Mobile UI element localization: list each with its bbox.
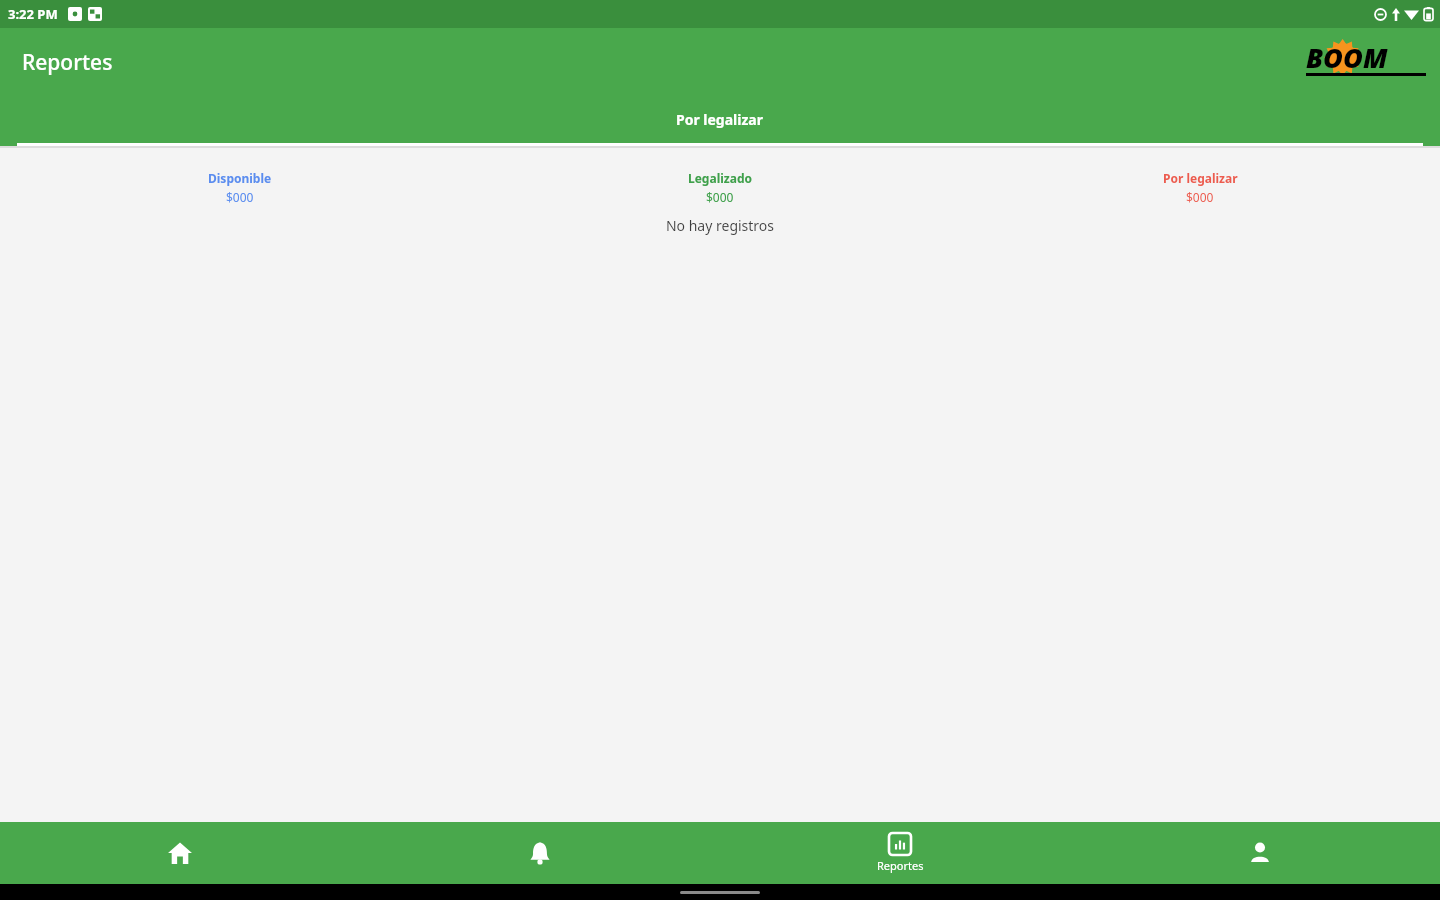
button[interactable]: Disponible — [0, 170, 480, 205]
button[interactable]: Por legalizar — [960, 170, 1440, 205]
button[interactable]: Profile — [1080, 822, 1440, 884]
staticText: Por legalizar — [1163, 170, 1238, 186]
button[interactable]: Legalizado — [480, 170, 960, 205]
staticText: Legalizado — [688, 170, 752, 186]
button[interactable]: Notifications — [360, 822, 720, 884]
staticText: No hay registros — [0, 216, 1440, 235]
staticText: 3:22 PM — [8, 5, 58, 23]
staticText: Por legalizar — [676, 110, 764, 129]
staticText: Reportes — [22, 48, 113, 77]
button[interactable]: Reportes — [720, 822, 1080, 884]
staticText: BOOM — [1306, 39, 1388, 76]
staticText: Disponible — [208, 170, 272, 186]
button[interactable]: BOOM logo — [1306, 39, 1426, 81]
staticText: $000 — [226, 189, 254, 205]
button[interactable]: Por legalizar — [0, 110, 1440, 146]
staticText: Reportes — [877, 858, 924, 873]
button[interactable]: Home — [0, 822, 360, 884]
staticText: $000 — [1186, 189, 1214, 205]
staticText: $000 — [706, 189, 734, 205]
